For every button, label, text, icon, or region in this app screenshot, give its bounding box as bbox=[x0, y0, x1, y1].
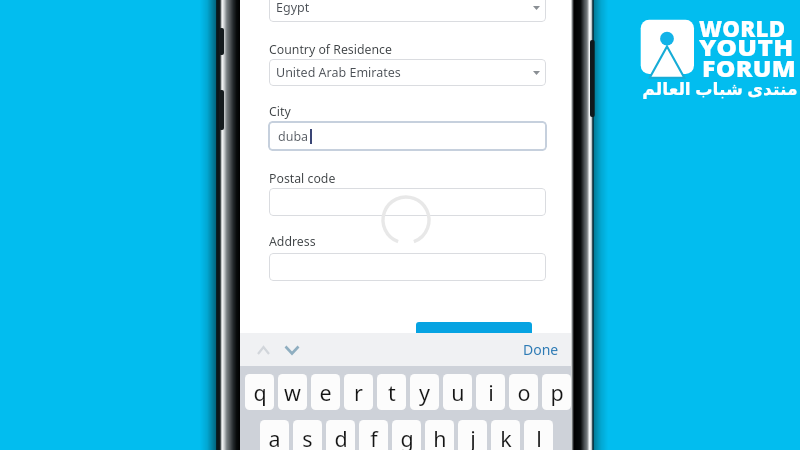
button[interactable]: f bbox=[359, 420, 388, 450]
staticText: United Arab Emirates bbox=[276, 64, 401, 81]
staticText: e bbox=[319, 378, 332, 407]
button[interactable]: o bbox=[509, 374, 538, 410]
button[interactable]: k bbox=[491, 420, 520, 450]
button[interactable]: u bbox=[443, 374, 472, 410]
staticText: منتدى شباب العالم bbox=[641, 77, 799, 100]
button[interactable]: p bbox=[542, 374, 571, 410]
button[interactable]: d bbox=[326, 420, 355, 450]
button[interactable]: g bbox=[392, 420, 421, 450]
staticText: p bbox=[550, 378, 564, 407]
button[interactable]: h bbox=[425, 420, 454, 450]
staticText: l bbox=[536, 424, 542, 450]
staticText: i bbox=[488, 378, 494, 407]
button[interactable]: Done bbox=[523, 340, 559, 359]
button[interactable]: Previous field bbox=[257, 346, 270, 355]
staticText: FORUM bbox=[702, 52, 797, 83]
button[interactable]: q bbox=[245, 374, 274, 410]
button[interactable]: i bbox=[476, 374, 505, 410]
staticText: a bbox=[268, 424, 281, 450]
button[interactable]: Postal code bbox=[269, 188, 546, 216]
staticText: Country of Residence bbox=[269, 41, 392, 58]
button[interactable]: r bbox=[344, 374, 373, 410]
button[interactable]: City bbox=[268, 121, 547, 151]
staticText: o bbox=[517, 378, 531, 407]
staticText: Done bbox=[523, 340, 559, 359]
staticText: w bbox=[284, 378, 301, 407]
staticText: s bbox=[302, 424, 313, 450]
staticText: g bbox=[400, 424, 414, 450]
staticText: d bbox=[334, 424, 348, 450]
staticText: j bbox=[470, 424, 476, 450]
staticText: u bbox=[451, 378, 465, 407]
staticText: Address bbox=[269, 233, 316, 250]
button[interactable]: t bbox=[377, 374, 406, 410]
button[interactable]: y bbox=[410, 374, 439, 410]
staticText: t bbox=[388, 378, 396, 407]
staticText: Egypt bbox=[276, 0, 310, 16]
staticText: Postal code bbox=[269, 170, 336, 187]
staticText: WORLD bbox=[699, 12, 786, 43]
button[interactable]: United Arab Emirates bbox=[269, 59, 546, 86]
staticText: duba bbox=[278, 128, 309, 145]
staticText: f bbox=[370, 424, 378, 450]
button[interactable]: w bbox=[278, 374, 307, 410]
staticText: q bbox=[253, 378, 267, 407]
staticText: r bbox=[354, 378, 363, 407]
button[interactable]: World Youth Forum logo bbox=[640, 18, 696, 80]
staticText: City bbox=[269, 103, 291, 120]
staticText: YOUTH bbox=[699, 31, 794, 62]
button[interactable]: Submit bbox=[416, 322, 532, 334]
button[interactable]: Egypt bbox=[269, 0, 546, 22]
button[interactable]: j bbox=[458, 420, 487, 450]
button[interactable]: a bbox=[260, 420, 289, 450]
button[interactable]: s bbox=[293, 420, 322, 450]
staticText: y bbox=[419, 378, 430, 407]
staticText: k bbox=[500, 424, 512, 450]
button[interactable]: Next field bbox=[284, 345, 300, 355]
button[interactable]: l bbox=[524, 420, 553, 450]
button[interactable]: Address bbox=[269, 253, 546, 281]
staticText: h bbox=[433, 424, 447, 450]
button[interactable]: e bbox=[311, 374, 340, 410]
